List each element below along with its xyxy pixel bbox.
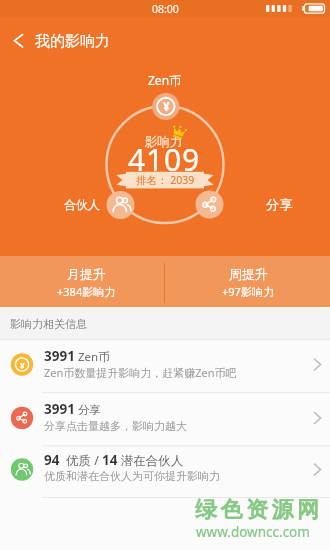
staticText: www.downcc.com bbox=[196, 523, 310, 541]
staticText: ¥ bbox=[163, 99, 170, 115]
staticText: 08:00 bbox=[152, 2, 179, 16]
staticText: Zen币 bbox=[148, 72, 182, 88]
staticText: 优质和潜在合伙人为可你提升影响力 bbox=[44, 469, 220, 483]
staticText: 周提升 bbox=[229, 266, 268, 282]
staticText: 3991 Zen币 bbox=[44, 347, 110, 365]
staticText: 3991 分享 bbox=[44, 400, 101, 418]
staticText: 分享点击量越多，影响力越大 bbox=[44, 419, 187, 433]
staticText: 分享 bbox=[266, 196, 294, 212]
staticText: 我的影响力 bbox=[35, 32, 110, 51]
staticText: Zen币数量提升影响力，赶紧赚Zen币吧 bbox=[44, 365, 237, 380]
staticText: 绿色资源网 bbox=[195, 496, 323, 524]
staticText: +97影响力 bbox=[222, 284, 274, 299]
staticText: 94 优质 / 14 潜在合伙人 bbox=[44, 451, 184, 469]
staticText: ¥ bbox=[20, 360, 25, 371]
staticText: 月提升 bbox=[67, 266, 106, 282]
staticText: 合伙人 bbox=[64, 197, 100, 212]
staticText: 排名： 2039 bbox=[136, 173, 195, 187]
staticText: +384影响力 bbox=[57, 284, 116, 299]
staticText: 4109 bbox=[128, 139, 200, 179]
staticText: 影响力相关信息 bbox=[10, 317, 87, 331]
staticText: 影响力 bbox=[145, 134, 183, 150]
